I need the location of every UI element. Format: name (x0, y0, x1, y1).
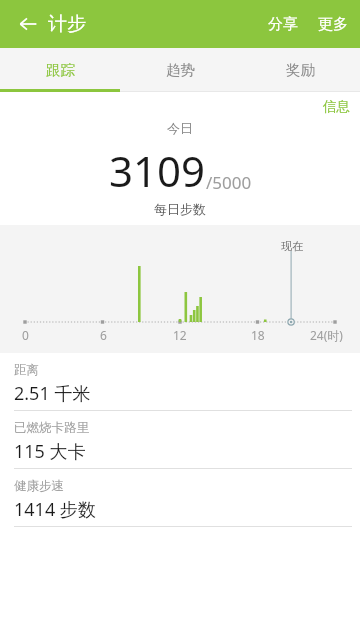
staticText: 12 (173, 327, 187, 343)
staticText: 健康步速 (14, 478, 64, 494)
button[interactable]: 跟踪 (0, 48, 120, 92)
staticText: 每日步数 (154, 201, 206, 217)
staticText: 18 (251, 327, 265, 343)
staticText: 今日 (167, 120, 193, 136)
staticText: 2.51 千米 (14, 381, 91, 406)
staticText: 1414 步数 (14, 497, 96, 522)
button[interactable]: 奖励 (240, 48, 360, 92)
staticText: 已燃烧卡路里 (14, 420, 89, 436)
staticText: 分享 (268, 15, 298, 34)
button[interactable]: 健康步速 (0, 469, 360, 526)
staticText: 115 大卡 (14, 439, 86, 464)
staticText: 现在 (281, 239, 303, 253)
staticText: 奖励 (286, 61, 315, 79)
staticText: 趋势 (166, 61, 195, 79)
button[interactable]: 趋势 (120, 48, 240, 92)
staticText: 信息 (323, 98, 350, 115)
staticText: 3109 (109, 142, 206, 199)
button[interactable]: Back (8, 4, 48, 44)
staticText: 跟踪 (46, 61, 75, 79)
button[interactable]: 距离 (0, 353, 360, 410)
button[interactable]: 已燃烧卡路里 (0, 411, 360, 468)
staticText: 计步 (48, 12, 86, 36)
button[interactable]: 分享 (258, 5, 308, 44)
staticText: /5000 (206, 171, 252, 194)
staticText: 24(时) (310, 327, 343, 343)
staticText: 更多 (318, 15, 348, 34)
staticText: 6 (100, 327, 107, 343)
button[interactable]: 更多 (308, 5, 360, 44)
button[interactable]: 信息 (313, 94, 360, 119)
staticText: 0 (22, 327, 29, 343)
staticText: 距离 (14, 362, 39, 378)
